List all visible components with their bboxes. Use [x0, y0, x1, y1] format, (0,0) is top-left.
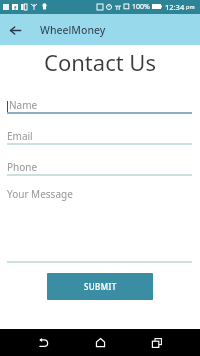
button[interactable]: Back — [0, 15, 30, 45]
staticText: Name — [9, 98, 38, 112]
button[interactable]: Back — [30, 329, 57, 356]
staticText: Contact Us — [0, 47, 200, 77]
staticText: f — [14, 4, 17, 10]
staticText: WheelMoney — [40, 23, 106, 37]
staticText: Your Message — [7, 187, 73, 201]
button[interactable]: SUBMIT — [47, 273, 153, 300]
staticText: pm — [186, 3, 195, 10]
button[interactable]: Recent apps — [143, 329, 170, 356]
staticText: 12:34 — [165, 2, 185, 12]
staticText: SUBMIT — [84, 281, 117, 292]
staticText: 100% — [132, 2, 150, 12]
staticText: Phone — [7, 160, 38, 174]
button[interactable]: Home — [87, 329, 114, 356]
staticText: Email — [7, 129, 33, 143]
